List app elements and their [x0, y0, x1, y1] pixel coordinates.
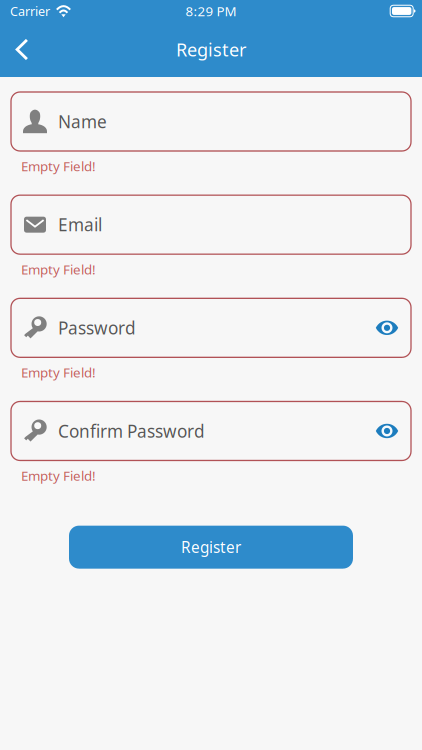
staticText: Empty Field! — [21, 363, 96, 381]
staticText: Carrier — [10, 2, 50, 20]
staticText: Name — [58, 110, 107, 133]
staticText: Empty Field! — [21, 260, 96, 278]
staticText: 8:29 PM — [185, 2, 236, 20]
staticText: Empty Field! — [21, 466, 96, 485]
staticText: Confirm Password — [58, 419, 205, 443]
staticText: Register — [176, 37, 246, 62]
button[interactable]: Show password — [363, 402, 411, 460]
button[interactable]: Show password — [363, 299, 411, 357]
button[interactable]: Register — [69, 526, 353, 569]
staticText: Email — [58, 213, 102, 236]
button[interactable]: Back — [0, 24, 44, 74]
staticText: Password — [58, 316, 136, 339]
staticText: Empty Field! — [21, 157, 96, 175]
staticText: Register — [181, 537, 241, 558]
